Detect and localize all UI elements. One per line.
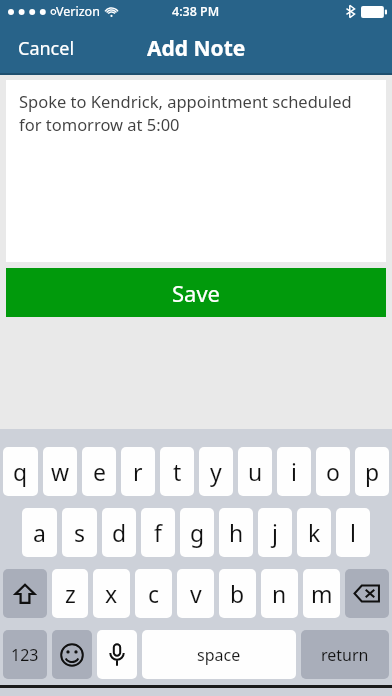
button[interactable]: r — [121, 447, 155, 496]
staticText: f — [154, 517, 162, 548]
staticText: r — [133, 456, 143, 487]
staticText: k — [308, 517, 321, 548]
staticText: space — [197, 644, 241, 666]
staticText: l — [350, 517, 356, 548]
button[interactable]: m — [303, 569, 340, 618]
button[interactable]: g — [180, 508, 214, 557]
button[interactable]: n — [261, 569, 298, 618]
staticText: m — [311, 578, 333, 609]
button[interactable]: s — [62, 508, 97, 557]
staticText: j — [272, 517, 278, 548]
staticText: Spoke to Kendrick, appointment scheduled… — [19, 90, 378, 136]
staticText: p — [365, 456, 380, 487]
staticText: Verizon — [56, 3, 100, 20]
button[interactable]: Numbers — [3, 630, 47, 679]
button[interactable]: d — [102, 508, 136, 557]
button[interactable]: j — [258, 508, 292, 557]
staticText: 123 — [11, 644, 39, 666]
button[interactable]: e — [82, 447, 116, 496]
button[interactable]: f — [141, 508, 175, 557]
button[interactable]: u — [238, 447, 272, 496]
staticText: h — [229, 517, 244, 548]
staticText: o — [326, 456, 340, 487]
staticText: e — [93, 456, 106, 487]
button[interactable]: space — [142, 630, 296, 679]
button[interactable]: a — [22, 508, 57, 557]
button[interactable]: t — [160, 447, 194, 496]
staticText: z — [65, 578, 76, 609]
staticText: b — [230, 578, 245, 609]
staticText: i — [291, 456, 297, 487]
button[interactable]: o — [316, 447, 350, 496]
staticText: x — [105, 578, 118, 609]
button[interactable]: p — [355, 447, 389, 496]
button[interactable]: Cancel — [0, 28, 93, 69]
button[interactable]: z — [52, 569, 88, 618]
button[interactable]: v — [177, 569, 214, 618]
staticText: w — [51, 456, 70, 487]
button[interactable]: Return — [301, 630, 389, 679]
staticText: Add Note — [147, 34, 246, 63]
staticText: return — [321, 644, 369, 666]
button[interactable]: Emoji — [52, 630, 92, 679]
staticText: q — [13, 456, 28, 487]
button[interactable]: c — [135, 569, 172, 618]
staticText: Save — [172, 278, 221, 308]
button[interactable]: x — [93, 569, 130, 618]
staticText: Cancel — [18, 36, 75, 61]
button[interactable]: q — [3, 447, 38, 496]
button[interactable]: Spoke to Kendrick, appointment scheduled… — [6, 80, 386, 262]
staticText: g — [190, 517, 205, 548]
staticText: n — [272, 578, 287, 609]
staticText: d — [112, 517, 127, 548]
staticText: c — [148, 578, 160, 609]
button[interactable]: y — [199, 447, 233, 496]
button[interactable]: w — [43, 447, 77, 496]
staticText: u — [248, 456, 263, 487]
button[interactable]: Backspace — [345, 569, 389, 618]
staticText: v — [190, 578, 202, 609]
staticText: 4:38 PM — [172, 3, 220, 20]
button[interactable]: h — [219, 508, 253, 557]
button[interactable]: Shift — [3, 569, 47, 618]
staticText: a — [33, 517, 46, 548]
button[interactable]: i — [277, 447, 311, 496]
staticText: t — [173, 456, 182, 487]
button[interactable]: b — [219, 569, 256, 618]
button[interactable]: k — [297, 508, 331, 557]
staticText: y — [210, 456, 222, 487]
button[interactable]: l — [336, 508, 370, 557]
button[interactable]: Dictation — [97, 630, 137, 679]
staticText: s — [74, 517, 86, 548]
button[interactable]: Save — [6, 268, 386, 317]
